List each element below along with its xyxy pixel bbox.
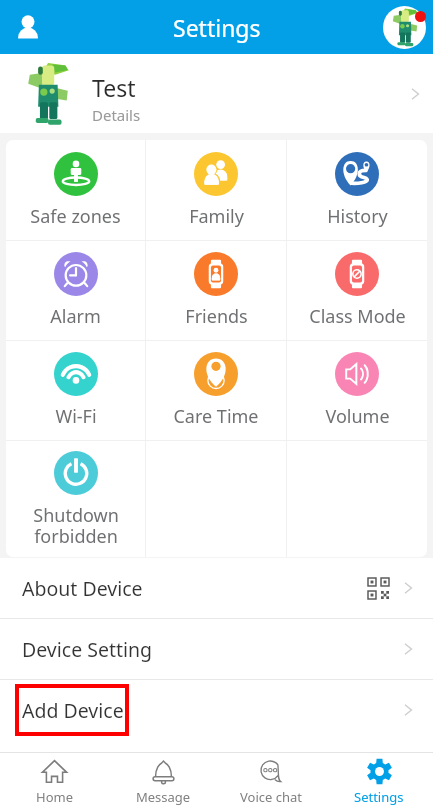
button[interactable]: Message (109, 753, 217, 811)
staticText: Class Mode (309, 304, 406, 329)
button[interactable]: Safe zones (6, 140, 145, 240)
staticText: Settings (173, 12, 261, 43)
staticText: History (327, 204, 388, 229)
staticText: Family (189, 204, 244, 229)
button[interactable]: Device Setting (0, 619, 433, 679)
staticText: Device Setting (22, 636, 153, 663)
button[interactable]: Shutdown forbidden (6, 441, 145, 557)
staticText: Shutdown forbidden (33, 503, 119, 548)
staticText: Wi-Fi (55, 404, 97, 429)
staticText: Settings (354, 788, 404, 806)
button[interactable]: About Device (0, 558, 433, 618)
button[interactable]: Settings (325, 753, 433, 811)
button[interactable]: History (287, 140, 427, 240)
staticText: Volume (325, 404, 390, 429)
staticText: Care Time (173, 404, 259, 429)
button[interactable]: Profile (380, 3, 428, 51)
button[interactable]: Alarm (6, 241, 145, 340)
button[interactable]: Add Device (0, 680, 433, 740)
button[interactable]: Wi-Fi (6, 341, 145, 440)
staticText: Safe zones (30, 204, 121, 229)
staticText: Test (92, 72, 136, 103)
staticText: Add Device (22, 697, 124, 724)
button[interactable]: Family (146, 140, 286, 240)
button[interactable]: Class Mode (287, 241, 427, 340)
staticText: Message (136, 788, 191, 806)
button[interactable]: Voice chat (217, 753, 325, 811)
button[interactable]: Volume (287, 341, 427, 440)
staticText: Friends (185, 304, 248, 329)
staticText: Details (92, 105, 141, 125)
button[interactable]: Home (0, 753, 109, 811)
button[interactable]: Care Time (146, 341, 286, 440)
button[interactable]: Test (0, 54, 433, 133)
button[interactable]: Friends (146, 241, 286, 340)
staticText: Home (36, 788, 73, 806)
button[interactable]: Account (6, 5, 50, 49)
staticText: About Device (22, 575, 143, 602)
staticText: Alarm (50, 304, 101, 329)
staticText: Voice chat (240, 788, 302, 806)
